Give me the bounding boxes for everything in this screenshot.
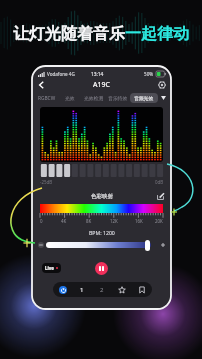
staticText: 音频光效 [134, 95, 154, 101]
staticText: 20K [155, 218, 163, 224]
staticText: 音乐特效 [108, 95, 128, 101]
button[interactable]: Pause [95, 262, 108, 275]
staticText: 0 [40, 218, 43, 224]
button[interactable]: Live [45, 265, 58, 271]
staticText: A19C [93, 80, 110, 90]
staticText: 让灯光随着音乐 [13, 24, 125, 44]
button[interactable]: Back [34, 78, 48, 92]
button[interactable]: Power [53, 282, 72, 297]
button[interactable]: 音乐特效 [106, 92, 130, 104]
button[interactable]: Settings [155, 78, 169, 92]
button[interactable]: Edit [155, 191, 166, 202]
staticText: 16K [135, 218, 143, 224]
button[interactable]: More tabs [158, 92, 169, 104]
staticText: 一起律动 [125, 24, 189, 44]
button[interactable]: 光效检测 [82, 92, 106, 104]
staticText: Live [45, 265, 54, 271]
staticText: 50% [144, 71, 154, 77]
staticText: 12K [110, 218, 118, 224]
staticText: BPM: 1200 [89, 229, 115, 236]
staticText: 13:14 [91, 71, 104, 78]
button[interactable]: Bookmark [132, 282, 152, 297]
staticText: 光效 [65, 95, 75, 101]
staticText: 色彩映射 [91, 193, 113, 200]
button[interactable]: Decrease BPM [36, 240, 46, 250]
staticText: 0dB [155, 179, 164, 185]
button[interactable]: 2 [92, 282, 112, 297]
staticText: 4K [61, 218, 67, 224]
button[interactable]: RGBCW [35, 92, 58, 104]
button[interactable] [46, 242, 151, 248]
button[interactable]: Increase BPM [158, 240, 168, 250]
button[interactable]: 1 [72, 282, 92, 297]
staticText: -25dB [40, 179, 52, 185]
staticText: 1 [80, 286, 84, 294]
button[interactable]: 音频光效 [134, 95, 154, 101]
button[interactable]: 光效 [58, 92, 82, 104]
staticText: 2 [100, 286, 104, 294]
staticText: Vodafone 4G [47, 71, 75, 77]
staticText: 光效检测 [84, 95, 104, 101]
staticText: 8K [86, 218, 92, 224]
button[interactable]: Favorite [112, 282, 132, 297]
staticText: RGBCW [38, 95, 56, 102]
